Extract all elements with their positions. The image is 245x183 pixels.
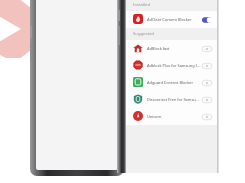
button[interactable]: AdClear Content Blocker — [126, 11, 217, 28]
button[interactable]: Disabled — [202, 112, 212, 122]
staticText: Adguard Content Blocker — [147, 80, 200, 85]
button[interactable]: Unicorn — [126, 108, 217, 125]
button[interactable]: Adblock Plus for Samsung Inter. — [126, 57, 217, 74]
button[interactable]: Disabled — [202, 95, 212, 105]
staticText: AdClear Content Blocker — [147, 17, 200, 22]
staticText: Installed — [133, 2, 150, 8]
button[interactable]: Disabled — [202, 44, 212, 54]
button[interactable]: Disabled — [202, 78, 212, 88]
staticText: AdBlock fast — [147, 46, 200, 51]
staticText: Disconnect Free for Samsung Int. — [147, 97, 200, 102]
button[interactable]: AdBlock fast — [126, 40, 217, 57]
button[interactable]: Disabled — [202, 61, 212, 71]
staticText: Adblock Plus for Samsung Inter. — [147, 63, 200, 68]
button[interactable]: Disconnect Free for Samsung Int. — [126, 91, 217, 108]
button[interactable]: Enabled — [202, 15, 212, 25]
button[interactable]: Adguard Content Blocker — [126, 74, 217, 91]
staticText: Unicorn — [147, 114, 200, 119]
staticText: Suggested — [133, 31, 154, 37]
